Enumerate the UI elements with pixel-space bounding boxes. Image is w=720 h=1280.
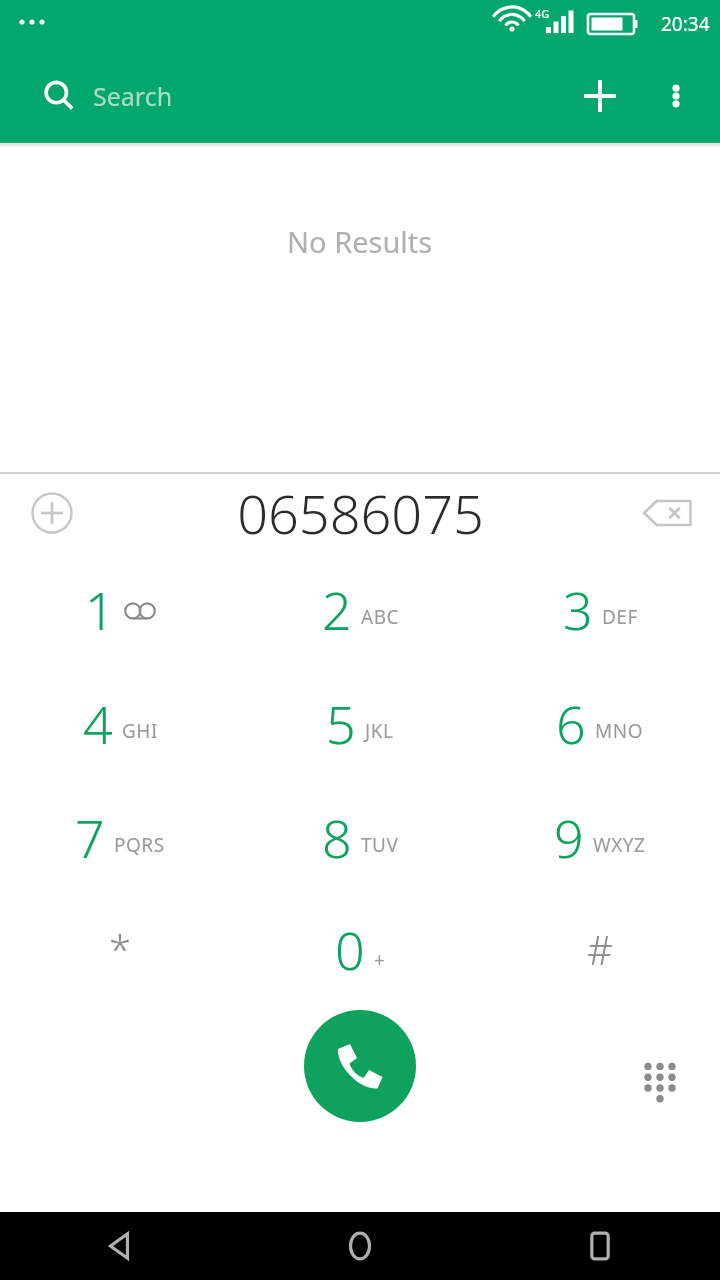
button[interactable]: Back [0, 1212, 240, 1280]
button[interactable]: Call [304, 1010, 416, 1122]
staticText: 4G [535, 6, 550, 21]
staticText: 3 [563, 574, 593, 645]
staticText: 2 [322, 574, 352, 645]
button[interactable]: Add to contacts [12, 474, 92, 552]
button[interactable]: 5 [240, 666, 480, 780]
button[interactable]: Backspace [626, 474, 708, 552]
button[interactable]: 4 [0, 666, 240, 780]
staticText: + [374, 947, 385, 973]
staticText: PQRS [114, 832, 165, 858]
staticText: Search [93, 79, 173, 113]
button[interactable]: 9 [480, 780, 720, 894]
button[interactable]: 6 [480, 666, 720, 780]
staticText: GHI [122, 718, 158, 744]
button[interactable]: Home [240, 1212, 480, 1280]
button[interactable]: 2 [240, 552, 480, 666]
staticText: # [587, 922, 613, 976]
button[interactable]: 1 [0, 552, 240, 666]
button[interactable]: Dialpad [622, 1042, 698, 1118]
button[interactable]: # [480, 894, 720, 1004]
button[interactable]: Add contact [564, 60, 636, 132]
staticText: No Results [287, 222, 433, 261]
staticText: 20:34 [661, 11, 710, 37]
staticText: JKL [365, 718, 394, 744]
button[interactable]: Recents [480, 1212, 720, 1280]
staticText: MNO [595, 718, 644, 744]
button[interactable]: More options [636, 56, 716, 136]
staticText: WXYZ [593, 832, 646, 858]
staticText: 8 [322, 802, 352, 873]
staticText: 9 [554, 802, 584, 873]
staticText: 06586075 [237, 476, 484, 550]
button[interactable]: 0 [240, 894, 480, 1004]
button[interactable]: Search [0, 79, 564, 113]
staticText: 1 [85, 574, 115, 645]
staticText: ABC [361, 604, 399, 630]
staticText: TUV [361, 832, 399, 858]
staticText: * [109, 922, 132, 976]
staticText: 0 [335, 914, 365, 985]
staticText: 4 [83, 688, 113, 759]
button[interactable]: * [0, 894, 240, 1004]
button[interactable]: 3 [480, 552, 720, 666]
staticText: DEF [602, 604, 638, 630]
button[interactable]: 7 [0, 780, 240, 894]
staticText: 5 [326, 688, 356, 759]
staticText: 7 [75, 802, 105, 873]
staticText: 6 [556, 688, 586, 759]
button[interactable]: 8 [240, 780, 480, 894]
